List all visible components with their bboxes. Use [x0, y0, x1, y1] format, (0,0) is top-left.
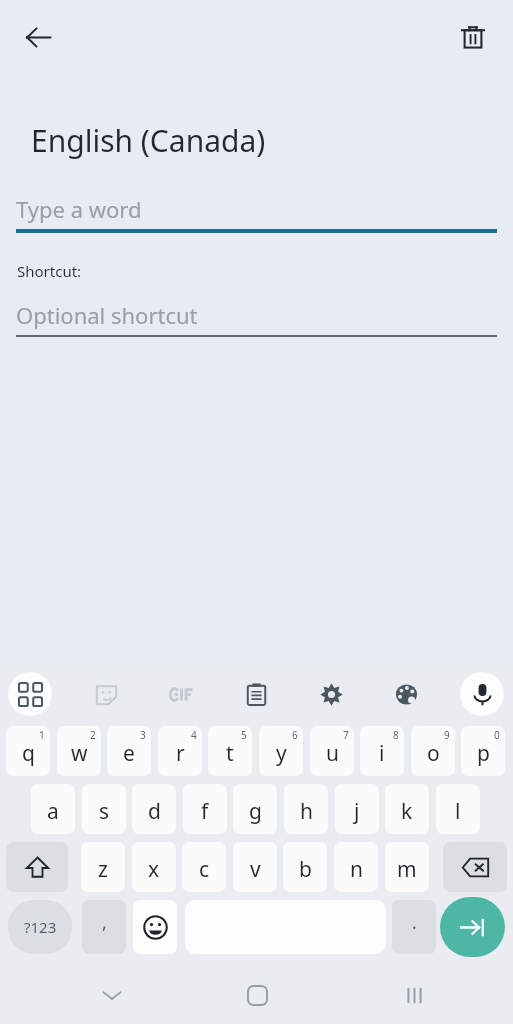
staticText: 0 [494, 728, 500, 742]
button[interactable]: b [283, 842, 327, 892]
button[interactable]: Enter [440, 897, 505, 957]
staticText: g [249, 797, 262, 826]
button[interactable]: i [360, 726, 404, 776]
button[interactable]: x [132, 842, 176, 892]
staticText: t [226, 739, 234, 768]
staticText: x [148, 855, 160, 884]
button[interactable]: Themes [384, 672, 428, 716]
staticText: p [477, 739, 490, 768]
staticText: r [176, 739, 185, 768]
button[interactable]: ?123 [8, 900, 72, 954]
staticText: l [455, 797, 461, 826]
button[interactable]: r [158, 726, 202, 776]
button[interactable]: z [81, 842, 125, 892]
staticText: k [401, 797, 413, 826]
button[interactable]: n [334, 842, 378, 892]
button[interactable]: Settings [309, 672, 353, 716]
staticText: n [350, 855, 363, 884]
staticText: . [412, 910, 417, 935]
button[interactable]: Hide keyboard [84, 966, 140, 1024]
button[interactable]: Backspace [443, 842, 507, 892]
button[interactable]: h [284, 784, 328, 834]
button[interactable]: Home [229, 967, 285, 1023]
staticText: Shortcut: [17, 261, 82, 281]
staticText: m [397, 855, 417, 884]
button[interactable]: Emoji [133, 900, 177, 954]
button[interactable]: d [132, 784, 176, 834]
button[interactable]: g [233, 784, 277, 834]
button[interactable]: Voice input [460, 672, 504, 716]
staticText: 2 [90, 728, 96, 742]
button[interactable]: f [183, 784, 227, 834]
staticText: 1 [39, 728, 45, 742]
button[interactable]: Clipboard [234, 672, 278, 716]
button[interactable]: s [82, 784, 126, 834]
button[interactable]: y [259, 726, 303, 776]
button[interactable]: Stickers [84, 672, 128, 716]
staticText: d [148, 797, 161, 826]
button[interactable]: Comma [82, 900, 126, 954]
button[interactable]: Period [392, 900, 436, 954]
button[interactable]: c [182, 842, 226, 892]
staticText: q [22, 739, 35, 768]
button[interactable]: u [310, 726, 354, 776]
button[interactable]: Recent apps [386, 967, 442, 1023]
staticText: b [299, 855, 312, 884]
staticText: o [427, 739, 440, 768]
staticText: e [123, 739, 135, 768]
button[interactable]: Symbols [8, 672, 52, 716]
button[interactable]: t [208, 726, 252, 776]
button[interactable]: Back [12, 11, 64, 63]
staticText: 8 [393, 728, 399, 742]
staticText: j [354, 797, 360, 826]
button[interactable]: v [233, 842, 277, 892]
staticText: 3 [140, 728, 146, 742]
button[interactable]: j [335, 784, 379, 834]
staticText: Optional shortcut [16, 300, 198, 330]
button[interactable]: GIF [159, 672, 203, 716]
button[interactable]: e [107, 726, 151, 776]
staticText: c [199, 855, 210, 884]
staticText: v [250, 855, 261, 884]
button[interactable]: w [57, 726, 101, 776]
staticText: ?123 [24, 917, 57, 937]
staticText: f [201, 797, 209, 826]
staticText: i [379, 739, 385, 768]
button[interactable]: Optional shortcut [16, 295, 497, 337]
button[interactable]: Delete [447, 11, 499, 63]
staticText: 7 [343, 728, 349, 742]
button[interactable]: m [385, 842, 429, 892]
button[interactable]: Shift [6, 842, 68, 892]
staticText: 6 [292, 728, 298, 742]
button[interactable]: k [385, 784, 429, 834]
button[interactable]: a [31, 784, 75, 834]
staticText: z [98, 855, 108, 884]
button[interactable]: o [411, 726, 455, 776]
staticText: English (Canada) [31, 120, 266, 161]
button[interactable]: Type a word [16, 189, 497, 233]
button[interactable]: q [6, 726, 50, 776]
button[interactable]: p [461, 726, 505, 776]
staticText: s [99, 797, 110, 826]
staticText: 5 [241, 728, 247, 742]
staticText: y [276, 739, 287, 768]
staticText: 4 [191, 728, 197, 742]
staticText: Type a word [16, 194, 142, 224]
staticText: w [71, 739, 88, 768]
staticText: , [102, 910, 107, 935]
button[interactable]: l [436, 784, 480, 834]
staticText: a [47, 797, 59, 826]
staticText: h [300, 797, 313, 826]
staticText: 9 [444, 728, 450, 742]
staticText: u [326, 739, 339, 768]
